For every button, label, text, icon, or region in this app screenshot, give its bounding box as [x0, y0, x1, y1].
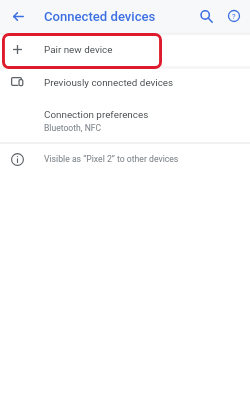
button[interactable]: Connection preferences	[0, 102, 250, 140]
staticText: Bluetooth, NFC	[44, 123, 102, 133]
button[interactable]: Previously connected devices	[0, 68, 250, 99]
button[interactable]: Pair new device	[0, 34, 250, 65]
staticText: Connection preferences	[44, 109, 149, 121]
button[interactable]: Navigate up	[6, 5, 29, 28]
staticText: Pair new device	[44, 44, 113, 56]
staticText: Connected devices	[44, 9, 156, 24]
staticText: Visible as “Pixel 2” to other devices	[44, 154, 179, 164]
button[interactable]: Help	[223, 5, 245, 27]
button[interactable]: Visible as “Pixel 2” to other devices	[0, 146, 250, 174]
button[interactable]: Search	[195, 5, 217, 27]
staticText: ?	[232, 12, 236, 21]
staticText: Previously connected devices	[44, 77, 174, 89]
